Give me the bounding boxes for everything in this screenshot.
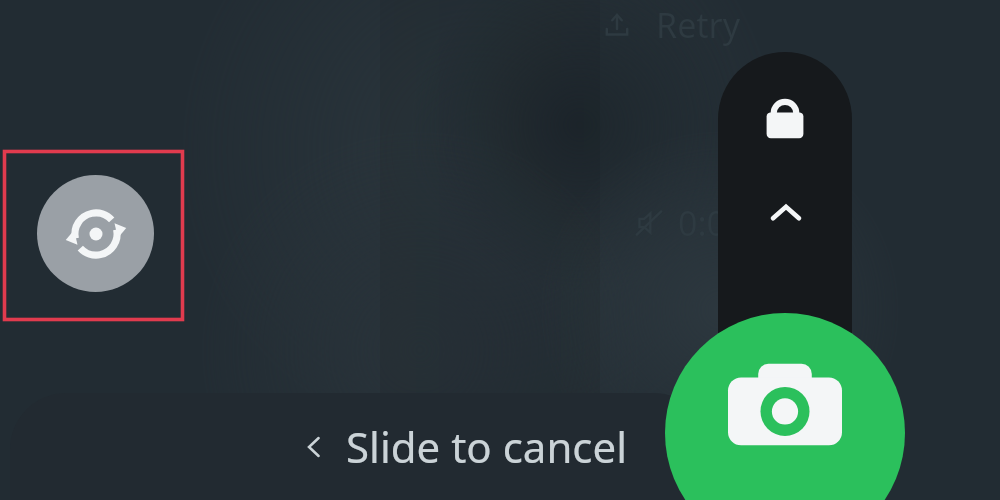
button[interactable]: Capture photo: [665, 313, 905, 500]
button[interactable]: Retry: [600, 2, 740, 48]
button[interactable]: Slide to cancel: [300, 418, 628, 475]
staticText: 0:0: [678, 200, 727, 246]
button[interactable]: [10, 393, 710, 500]
other: Lock: [762, 94, 808, 140]
button[interactable]: Switch camera: [37, 175, 154, 292]
button[interactable]: Lock recording: [718, 52, 852, 372]
staticText: Slide to cancel: [346, 418, 628, 475]
staticText: Retry: [656, 2, 740, 48]
other: Slide up to lock: [768, 196, 804, 232]
